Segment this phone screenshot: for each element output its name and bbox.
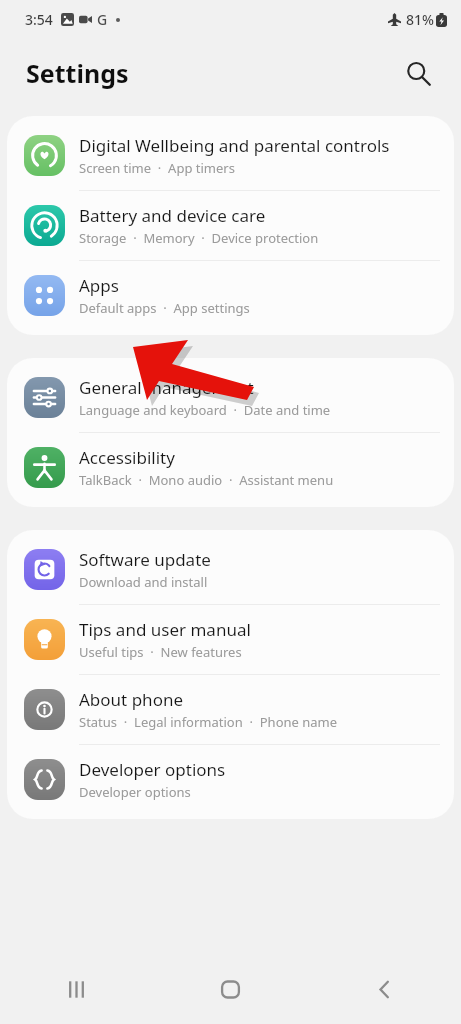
staticText: Screen time · App timers (79, 159, 235, 177)
staticText: Tips and user manual (79, 618, 251, 641)
staticText: Default apps · App settings (79, 299, 250, 317)
button[interactable]: Recents (0, 955, 153, 1024)
staticText: General management (79, 376, 254, 399)
staticText: Software update (79, 548, 211, 571)
button[interactable]: Home (153, 955, 307, 1024)
staticText: Download and install (79, 573, 208, 591)
button[interactable]: Software update (7, 535, 454, 604)
button[interactable]: Accessibility (7, 433, 454, 502)
staticText: About phone (79, 688, 184, 711)
staticText: 81% (406, 10, 434, 29)
staticText: G (97, 10, 108, 29)
staticText: Developer options (79, 758, 226, 781)
button[interactable]: Back (307, 955, 461, 1024)
button[interactable]: About phone (7, 675, 454, 744)
staticText: Apps (79, 274, 119, 297)
button[interactable]: General management (7, 363, 454, 432)
staticText: Developer options (79, 783, 191, 801)
staticText: Status · Legal information · Phone name (79, 713, 338, 731)
staticText: Settings (26, 56, 129, 90)
staticText: Digital Wellbeing and parental controls (79, 134, 390, 157)
staticText: 3:54 (25, 10, 53, 29)
staticText: Useful tips · New features (79, 643, 242, 661)
button[interactable]: Apps (7, 261, 454, 330)
button[interactable]: Tips and user manual (7, 605, 454, 674)
button[interactable]: Digital Wellbeing and parental controls (7, 121, 454, 190)
staticText: TalkBack · Mono audio · Assistant menu (79, 471, 334, 489)
staticText: Storage · Memory · Device protection (79, 229, 319, 247)
staticText: Battery and device care (79, 204, 266, 227)
button[interactable]: Developer options (7, 745, 454, 814)
button[interactable]: Battery and device care (7, 191, 454, 260)
staticText: Language and keyboard · Date and time (79, 401, 331, 419)
button[interactable]: Search (395, 50, 441, 96)
staticText: Accessibility (79, 446, 175, 469)
